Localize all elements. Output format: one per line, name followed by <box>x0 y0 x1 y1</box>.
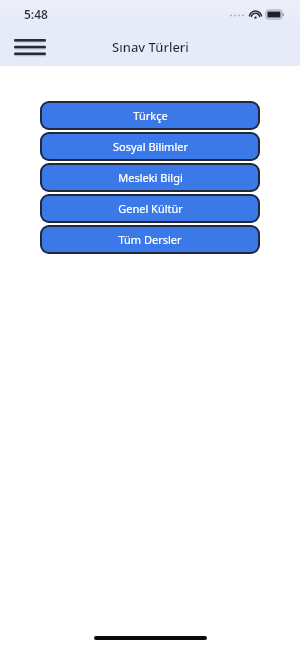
button[interactable]: Genel Kültür <box>40 194 260 223</box>
staticText: Sınav Türleri <box>112 38 189 56</box>
staticText: Genel Kültür <box>118 201 183 216</box>
button[interactable]: Sosyal Bilimler <box>40 132 260 161</box>
staticText: Mesleki Bilgi <box>118 170 183 185</box>
button[interactable]: Tüm Dersler <box>40 225 260 254</box>
button[interactable]: Open navigation menu <box>9 31 51 63</box>
staticText: Tüm Dersler <box>118 232 182 247</box>
staticText: Türkçe <box>133 108 168 123</box>
staticText: 5:48 <box>24 6 48 22</box>
button[interactable]: Mesleki Bilgi <box>40 163 260 192</box>
staticText: Sosyal Bilimler <box>113 139 188 154</box>
button[interactable]: Türkçe <box>40 101 260 130</box>
